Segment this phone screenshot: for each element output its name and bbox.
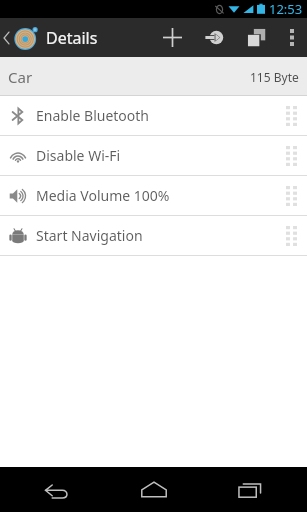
button[interactable]: Recent apps: [210, 467, 290, 512]
button[interactable]: More options: [277, 18, 307, 57]
staticText: Start Navigation: [36, 226, 143, 245]
button[interactable]: Details: [0, 25, 104, 51]
staticText: Details: [46, 27, 98, 49]
button[interactable]: Add: [151, 18, 193, 57]
button[interactable]: Import: [193, 18, 235, 57]
staticText: 115 Byte: [250, 69, 299, 85]
staticText: 12:53: [269, 0, 303, 18]
button[interactable]: Disable Wi-Fi: [0, 136, 307, 175]
button[interactable]: Back: [17, 467, 97, 512]
button[interactable]: Copy: [235, 18, 277, 57]
button[interactable]: Media Volume 100%: [0, 176, 307, 215]
button[interactable]: Start Navigation: [0, 216, 307, 255]
button[interactable]: Home: [114, 467, 194, 512]
staticText: Media Volume 100%: [36, 186, 170, 205]
staticText: Disable Wi-Fi: [36, 146, 121, 165]
button[interactable]: Enable Bluetooth: [0, 96, 307, 135]
staticText: Enable Bluetooth: [36, 106, 150, 125]
staticText: Car: [8, 67, 33, 87]
